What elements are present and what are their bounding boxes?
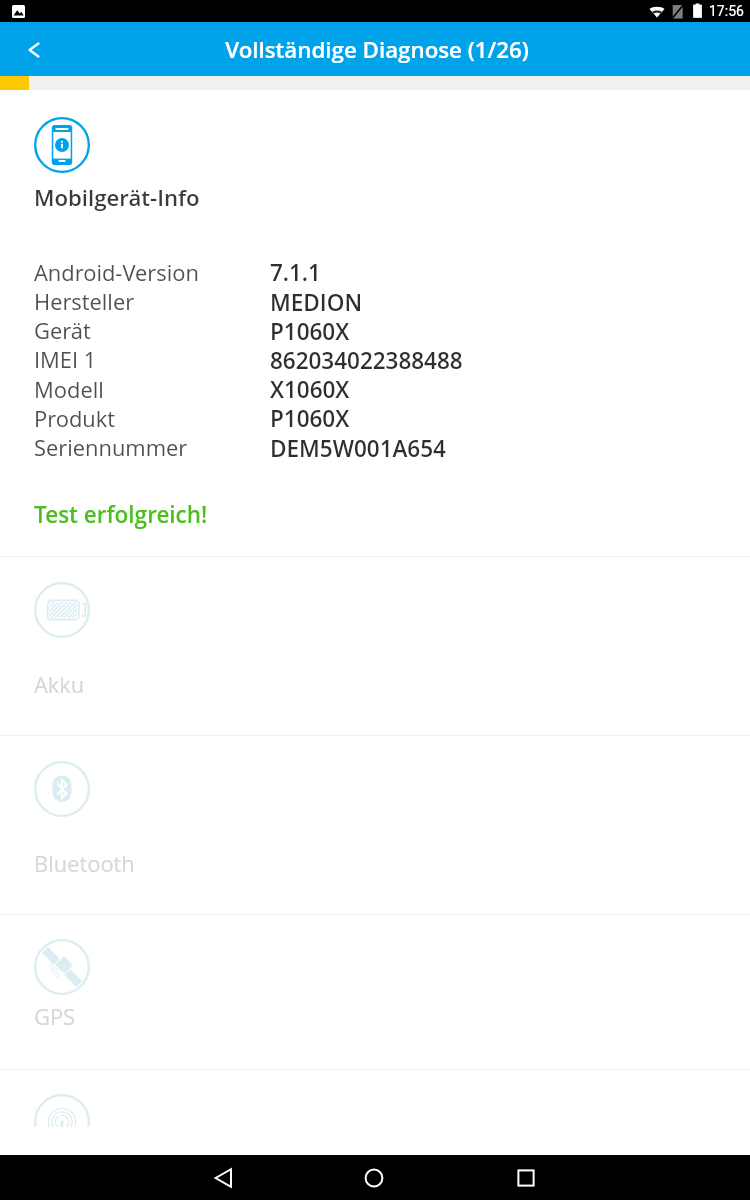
staticText: Produkt [34,404,115,434]
staticText: Mobilgerät-Info [34,182,200,212]
button[interactable]: Akku [34,582,90,638]
staticText: P1060X [270,316,350,347]
staticText: Modell [34,375,104,405]
staticText: DEM5W001A654 [270,433,446,464]
staticText: X1060X [270,374,350,405]
button[interactable]: WLAN [34,1094,90,1127]
button[interactable]: Startbildschirm [346,1155,402,1200]
button[interactable]: Übersicht [498,1155,554,1200]
staticText: MEDION [270,287,363,318]
button[interactable]: GPS [34,939,90,995]
staticText: Gerät [34,316,91,346]
button[interactable]: Zurück [195,1155,251,1200]
staticText: Hersteller [34,287,135,317]
button[interactable]: Bluetooth [34,761,90,817]
staticText: Bluetooth [34,849,135,879]
staticText: 862034022388488 [270,345,463,376]
staticText: IMEI 1 [34,345,97,375]
staticText: GPS [34,1002,76,1032]
staticText: Vollständige Diagnose (1/26) [225,34,529,64]
staticText: Akku [34,670,85,700]
staticText: P1060X [270,403,350,434]
staticText: 7.1.1 [270,257,321,288]
button[interactable]: Zurück [11,27,56,72]
staticText: 17:56 [709,3,744,19]
staticText: Test erfolgreich! [34,499,208,530]
staticText: Seriennummer [34,433,188,463]
staticText: Android-Version [34,258,199,288]
